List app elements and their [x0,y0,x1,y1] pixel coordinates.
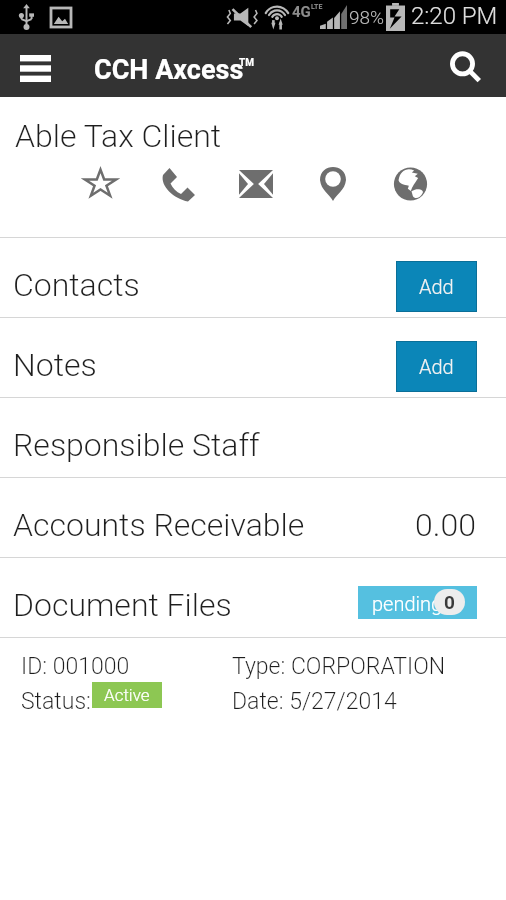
staticText: 0 [444,591,455,613]
staticText: 98% [349,6,385,28]
staticText: Type: CORPORATION [232,653,446,680]
staticText: 0.00 [415,506,476,544]
button[interactable]: Document Files [0,558,506,637]
button[interactable]: Contacts [0,238,506,317]
staticText: Active [104,685,150,705]
staticText: Document Files [13,586,232,624]
button[interactable]: Search [440,39,496,91]
button[interactable]: pending [358,586,477,619]
staticText: Responsible Staff [13,426,260,464]
staticText: TM [239,57,254,69]
button[interactable]: Location [308,155,356,203]
staticText: 4G [292,3,311,21]
button[interactable]: Call [150,154,198,202]
staticText: Add [419,275,454,298]
button[interactable]: Add [397,262,476,311]
button[interactable]: Add [397,342,476,391]
staticText: Accounts Receivable [13,506,305,544]
staticText: 2:20 PM [411,2,498,30]
staticText: Date: 5/27/2014 [232,688,397,715]
staticText: LTE [311,3,323,11]
button[interactable]: Open navigation menu [4,39,66,91]
staticText: Add [419,355,454,378]
button[interactable]: Website [385,155,433,203]
staticText: CCH Axcess [94,54,244,86]
button[interactable]: Email [231,155,279,203]
button[interactable]: Accounts Receivable [0,478,506,557]
button[interactable]: Responsible Staff [0,398,506,477]
button[interactable]: Favorite [77,155,125,203]
staticText: Notes [13,346,97,384]
staticText: ID: 001000 [21,653,130,680]
staticText: Able Tax Client [15,117,222,155]
button[interactable]: Notes [0,318,506,397]
staticText: Status: [21,688,91,715]
staticText: Contacts [13,266,140,304]
button[interactable]: Active [92,682,162,708]
staticText: pending [372,592,443,615]
